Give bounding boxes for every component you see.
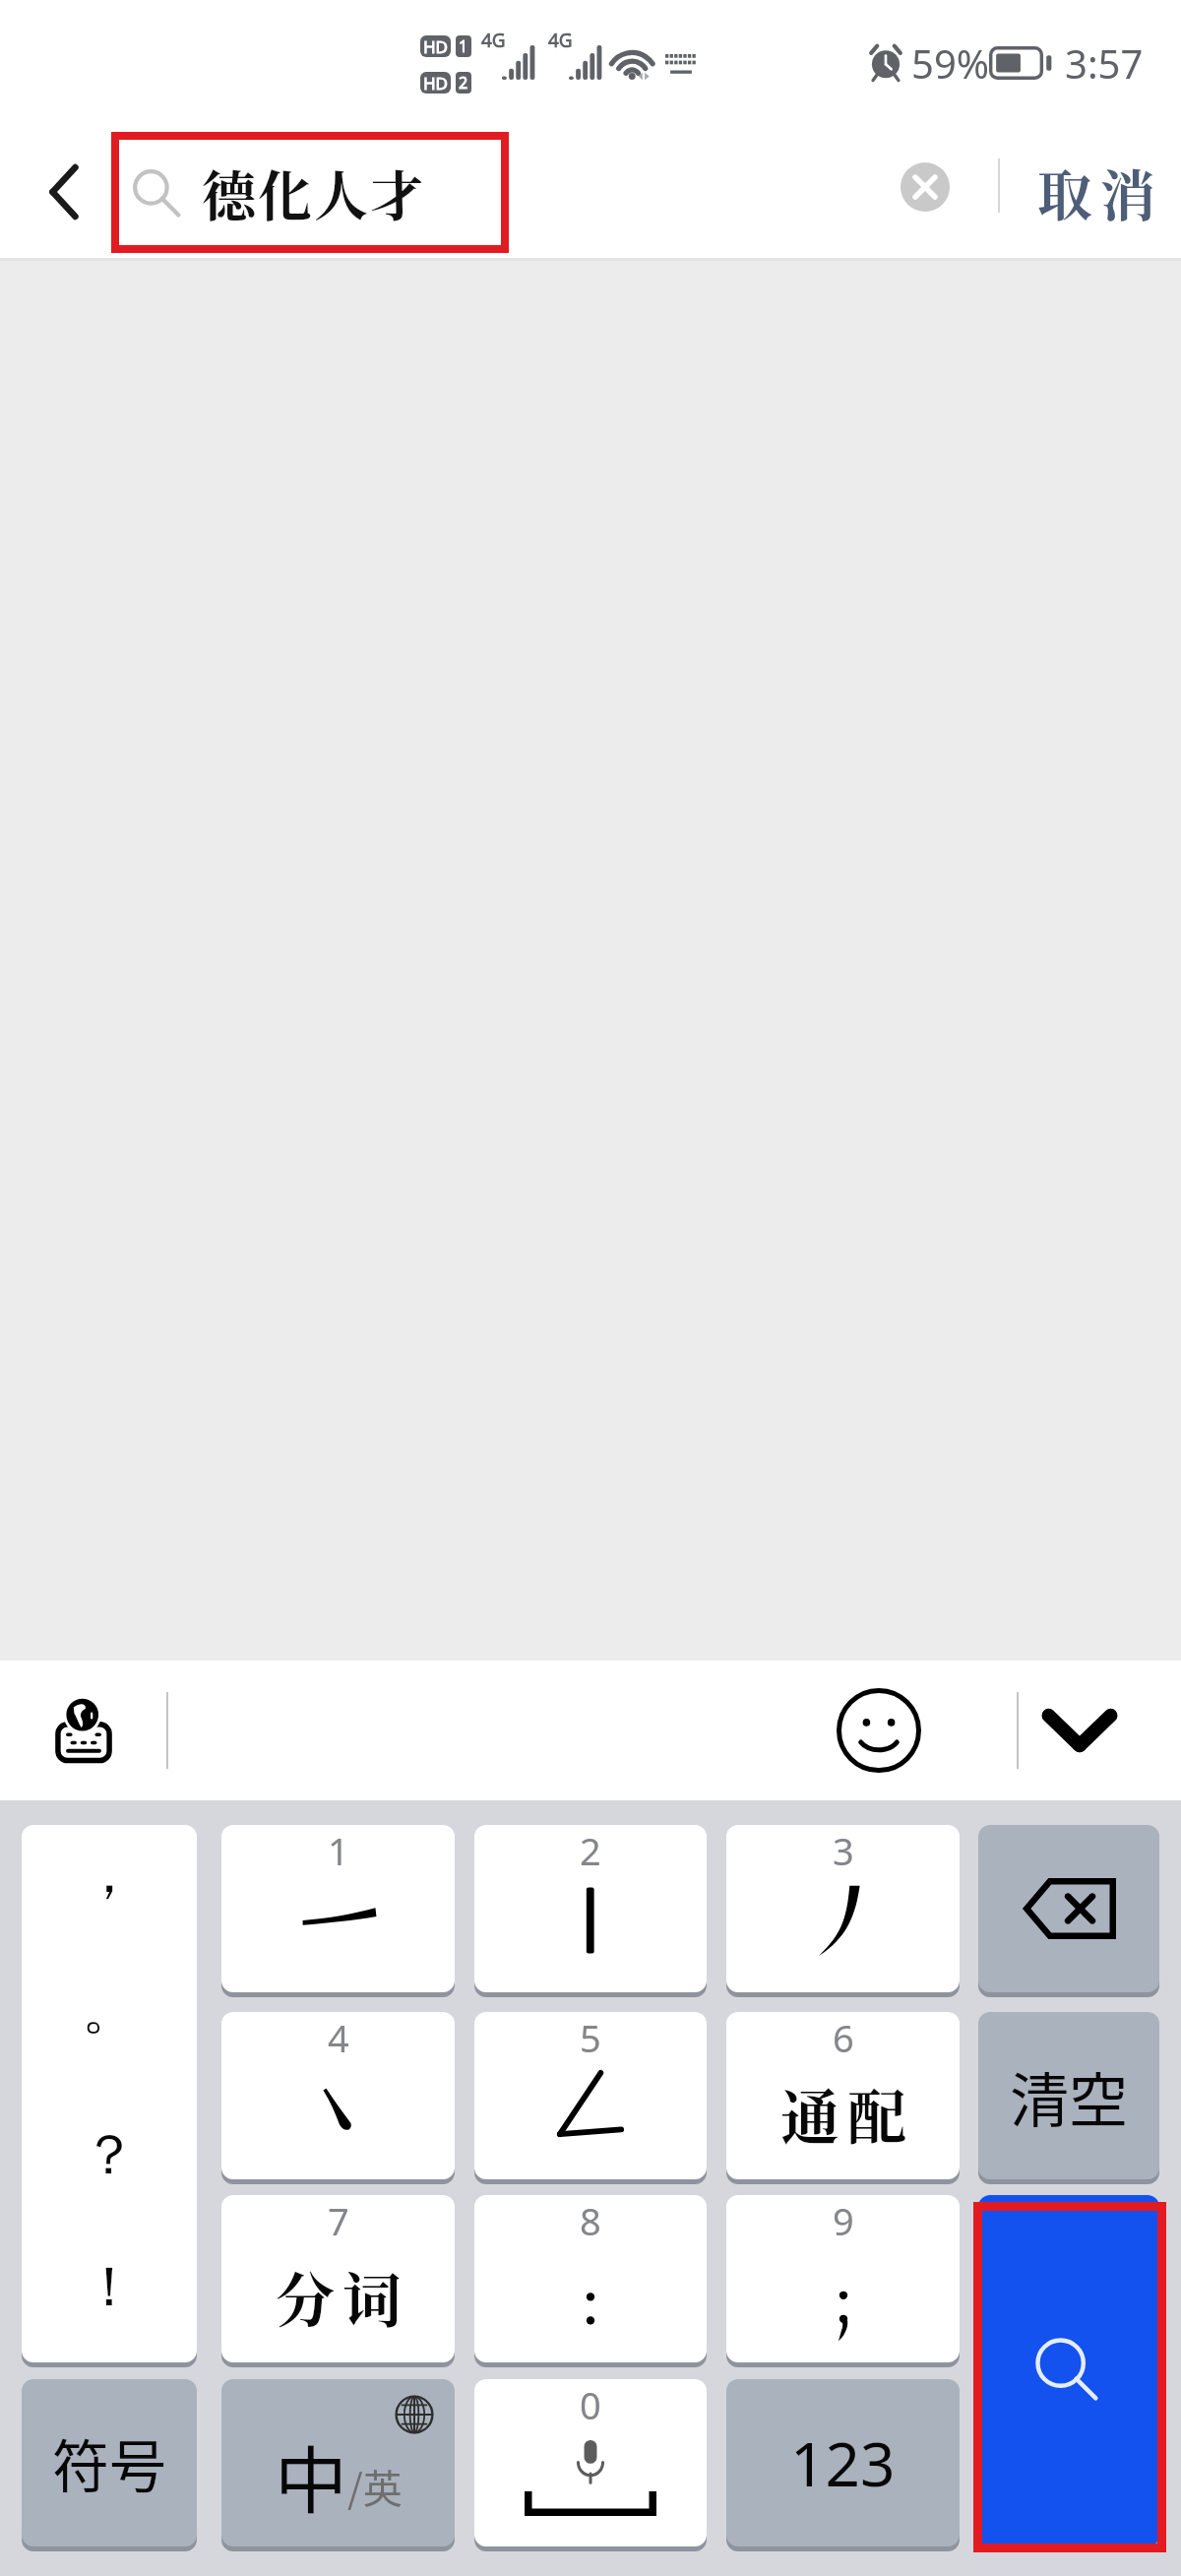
staticText: 符号 [52, 2421, 167, 2504]
button[interactable]: Emoji [828, 1679, 930, 1782]
button[interactable]: 德 [111, 132, 509, 253]
button[interactable]: 符号 [22, 2379, 197, 2546]
button[interactable]: Colon (8) [474, 2195, 707, 2362]
button[interactable]: Back [12, 138, 116, 246]
button[interactable]: 123 [726, 2379, 960, 2546]
staticText: 清空 [1010, 2053, 1128, 2139]
staticText: 化 [258, 154, 313, 231]
staticText: 取 [1037, 153, 1092, 231]
staticText: 3 [833, 1825, 854, 1876]
staticText: 德 [202, 154, 257, 231]
button[interactable]: ， [22, 1825, 197, 2362]
staticText: 6 [833, 2012, 854, 2063]
staticText: 通 [780, 2071, 839, 2156]
staticText: ？ [82, 2120, 137, 2190]
button[interactable]: Backspace [978, 1825, 1159, 1992]
staticText: ， [82, 1839, 137, 1909]
staticText: 8 [580, 2195, 601, 2246]
staticText: 1 [328, 1825, 349, 1876]
staticText: 词 [342, 2254, 402, 2339]
button[interactable]: 取 [1027, 140, 1165, 244]
staticText: /英 [347, 2458, 403, 2515]
staticText: 配 [847, 2071, 906, 2156]
button[interactable]: 7 [221, 2195, 455, 2362]
button[interactable]: Stroke dian (4) [221, 2012, 455, 2179]
button[interactable]: 清空 [978, 2012, 1159, 2179]
staticText: 中 [275, 2422, 347, 2528]
button[interactable]: Search [978, 2195, 1159, 2546]
staticText: 2 [580, 1825, 601, 1876]
button[interactable]: Semicolon (9) [726, 2195, 960, 2362]
staticText: 0 [580, 2379, 601, 2430]
staticText: 2 [459, 72, 468, 94]
staticText: HD [423, 35, 449, 57]
staticText: 123 [790, 2421, 896, 2504]
staticText: 才 [370, 154, 425, 231]
button[interactable]: Stroke heng (1) [221, 1825, 455, 1992]
button[interactable]: 6 [726, 2012, 960, 2179]
button[interactable]: Stroke shu (2) [474, 1825, 707, 1992]
staticText: 消 [1100, 153, 1155, 231]
staticText: 。 [82, 1975, 137, 2044]
staticText: 人 [314, 154, 369, 231]
staticText: 7 [328, 2195, 349, 2246]
staticText: 4G [481, 28, 506, 53]
button[interactable]: Space [474, 2379, 707, 2546]
staticText: 1 [459, 35, 468, 57]
button[interactable]: Stroke pie (3) [726, 1825, 960, 1992]
button[interactable]: Hide keyboard [1021, 1671, 1139, 1790]
button[interactable]: 中 [221, 2379, 455, 2546]
staticText: HD [423, 72, 449, 94]
staticText: 59% [911, 36, 989, 90]
staticText: 9 [833, 2195, 854, 2246]
staticText: 分 [276, 2254, 335, 2339]
staticText: 3:57 [1065, 36, 1144, 90]
staticText: 4G [548, 28, 573, 53]
button[interactable]: Clear text [880, 142, 970, 232]
staticText: 5 [580, 2012, 601, 2063]
staticText: ！ [82, 2252, 137, 2322]
staticText: 4 [328, 2012, 349, 2063]
button[interactable]: Input languages [34, 1681, 133, 1780]
button[interactable]: Stroke zhe (5) [474, 2012, 707, 2179]
